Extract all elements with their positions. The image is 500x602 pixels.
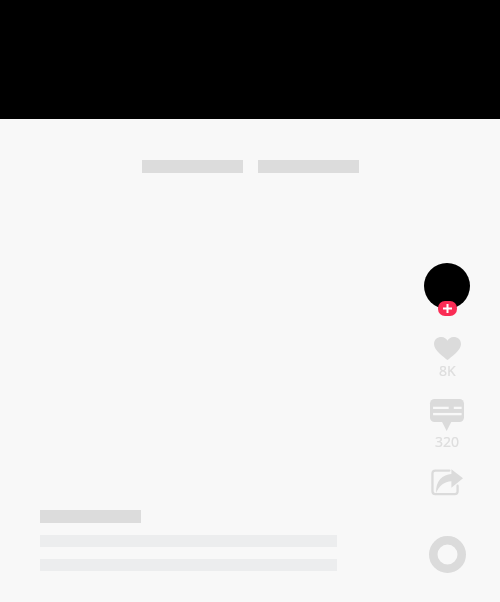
button[interactable]: Music	[429, 536, 466, 573]
button[interactable]: Like	[430, 337, 464, 380]
button[interactable]: Profile	[424, 263, 470, 317]
button[interactable]: Share	[432, 469, 463, 496]
staticText: 8K	[439, 361, 456, 380]
button[interactable]: Comment	[430, 399, 464, 451]
staticText: 320	[435, 432, 460, 451]
